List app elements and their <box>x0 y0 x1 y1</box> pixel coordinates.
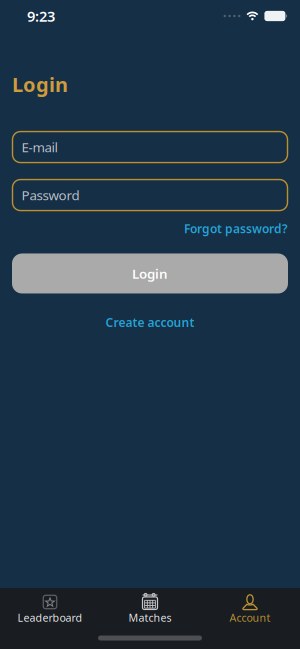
button[interactable]: Leaderboard <box>0 592 100 626</box>
staticText: Forgot password? <box>184 221 288 236</box>
button[interactable]: Create account <box>105 314 194 330</box>
button[interactable]: Account <box>200 592 300 626</box>
staticText: Account <box>229 610 270 625</box>
button[interactable]: Password <box>0 180 300 211</box>
staticText: Create account <box>105 314 194 330</box>
button[interactable]: Login <box>0 253 300 293</box>
staticText: Password <box>21 186 79 204</box>
button[interactable]: Forgot password? <box>184 221 288 236</box>
button[interactable]: Matches <box>100 592 200 626</box>
staticText: Leaderboard <box>17 610 82 625</box>
staticText: Login <box>132 265 168 282</box>
staticText: Matches <box>128 610 171 625</box>
staticText: E-mail <box>21 138 57 156</box>
staticText: Login <box>12 71 68 98</box>
staticText: 9:23 <box>27 6 55 26</box>
button[interactable]: E-mail <box>0 132 300 163</box>
